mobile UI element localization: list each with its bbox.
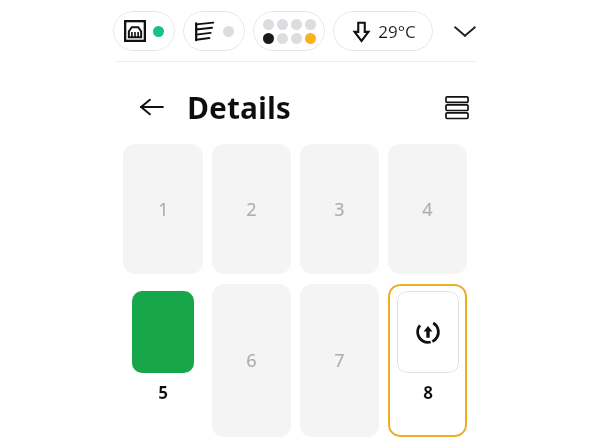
button[interactable]: List view (440, 90, 474, 124)
button[interactable]: 2 (212, 144, 291, 274)
button[interactable]: Expand (447, 13, 482, 49)
staticText: 8 (423, 381, 433, 404)
button[interactable]: 5 (123, 284, 203, 437)
staticText: 1 (158, 197, 169, 222)
button[interactable]: 6 (212, 284, 291, 437)
staticText: 5 (158, 381, 168, 404)
button[interactable]: 4 (388, 144, 467, 274)
button[interactable]: 8 (388, 284, 467, 437)
staticText: 7 (334, 348, 345, 373)
staticText: 6 (246, 348, 257, 373)
button[interactable] (113, 11, 175, 51)
staticText: 3 (334, 197, 345, 222)
button[interactable]: 1 (123, 144, 203, 274)
staticText: 4 (422, 197, 433, 222)
button[interactable] (183, 11, 245, 51)
button[interactable] (253, 11, 325, 51)
staticText: Details (187, 87, 291, 128)
button[interactable]: Back (135, 90, 169, 124)
button[interactable]: 3 (300, 144, 379, 274)
button[interactable]: 29°C (333, 11, 433, 51)
button[interactable]: 7 (300, 284, 379, 437)
staticText: 2 (246, 197, 257, 222)
staticText: 29°C (378, 20, 416, 43)
